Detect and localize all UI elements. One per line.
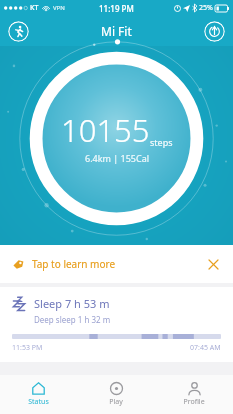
staticText: 11:19 PM — [99, 3, 134, 14]
button[interactable]: Profile — [155, 375, 233, 414]
staticText: Play — [109, 397, 123, 407]
button[interactable]: Play — [77, 375, 155, 414]
staticText: 25% — [199, 3, 213, 13]
button[interactable]: Tap to learn more — [0, 245, 233, 283]
staticText: VPN — [53, 4, 65, 12]
staticText: Mi Fit — [101, 23, 132, 39]
staticText: Profile — [183, 397, 205, 407]
staticText: Status — [28, 397, 49, 407]
staticText: 6.4km | 155Cal — [85, 152, 150, 164]
button[interactable]: Close — [205, 256, 221, 272]
staticText: KT — [30, 3, 39, 13]
staticText: 11:53 PM — [12, 343, 43, 353]
staticText: Sleep 7 h 53 m — [34, 296, 110, 311]
button[interactable]: Sleep 7 h 53 m — [0, 287, 233, 362]
staticText: 07:45 AM — [190, 343, 221, 353]
staticText: steps — [150, 136, 173, 148]
button[interactable]: Sync — [204, 21, 225, 42]
staticText: Deep sleep 1 h 32 m — [34, 314, 111, 325]
staticText: Tap to learn more — [32, 257, 116, 271]
button[interactable]: Workout — [8, 21, 29, 42]
staticText: 10155 — [61, 109, 150, 151]
button[interactable]: Status — [0, 375, 77, 414]
